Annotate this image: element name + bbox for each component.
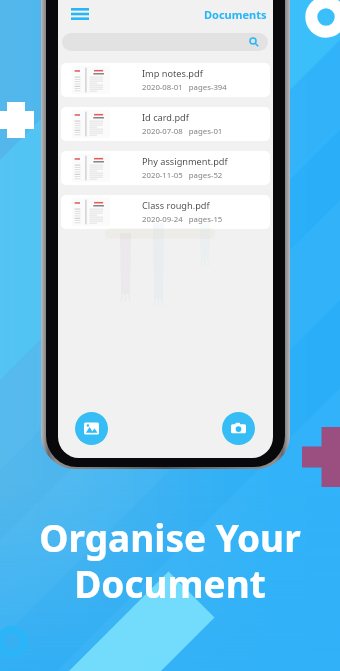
staticText: Document: [74, 558, 266, 608]
button[interactable]: Menu: [69, 4, 91, 24]
staticText: Id card.pdf: [142, 111, 189, 124]
button[interactable]: Class rough.pdf: [61, 195, 270, 229]
staticText: Phy assignment.pdf: [142, 155, 228, 168]
button[interactable]: Id card.pdf: [61, 107, 270, 141]
staticText: 2020-09-24 pages-15: [142, 214, 223, 225]
staticText: Imp notes.pdf: [142, 67, 203, 80]
staticText: Class rough.pdf: [142, 199, 210, 212]
button[interactable]: Gallery: [75, 412, 108, 445]
staticText: 2020-07-08 pages-01: [142, 126, 223, 137]
button[interactable]: Imp notes.pdf: [61, 63, 270, 97]
button[interactable]: Camera: [222, 412, 255, 445]
staticText: 2020-11-05 pages-52: [142, 170, 223, 181]
staticText: Organise Your: [39, 512, 301, 562]
button[interactable]: Phy assignment.pdf: [61, 151, 270, 185]
staticText: Documents: [204, 7, 267, 22]
button[interactable]: [62, 33, 268, 51]
staticText: 2020-08-01 pages-394: [142, 82, 227, 93]
